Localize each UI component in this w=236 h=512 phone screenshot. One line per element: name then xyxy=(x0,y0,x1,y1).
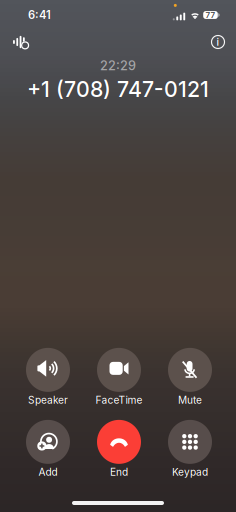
staticText: Add xyxy=(38,466,57,478)
staticText: FaceTime xyxy=(95,394,142,406)
staticText: Speaker xyxy=(28,394,68,406)
button[interactable]: Speaker xyxy=(12,347,83,407)
staticText: +1 (708) 747-0121 xyxy=(27,76,209,102)
button[interactable]: Audio source xyxy=(6,30,35,54)
button[interactable]: FaceTime xyxy=(83,347,154,407)
button[interactable]: End xyxy=(83,419,154,479)
button[interactable]: Call details xyxy=(206,30,230,54)
staticText: 77 xyxy=(205,10,215,20)
button[interactable]: Mute xyxy=(154,347,225,407)
staticText: 6:41 xyxy=(28,8,51,22)
button[interactable]: Keypad xyxy=(154,419,225,479)
staticText: i xyxy=(216,36,219,48)
staticText: End xyxy=(110,466,128,478)
staticText: Keypad xyxy=(172,466,208,478)
button[interactable]: Add xyxy=(12,419,83,479)
staticText: Mute xyxy=(178,394,202,406)
staticText: 22:29 xyxy=(100,58,136,73)
